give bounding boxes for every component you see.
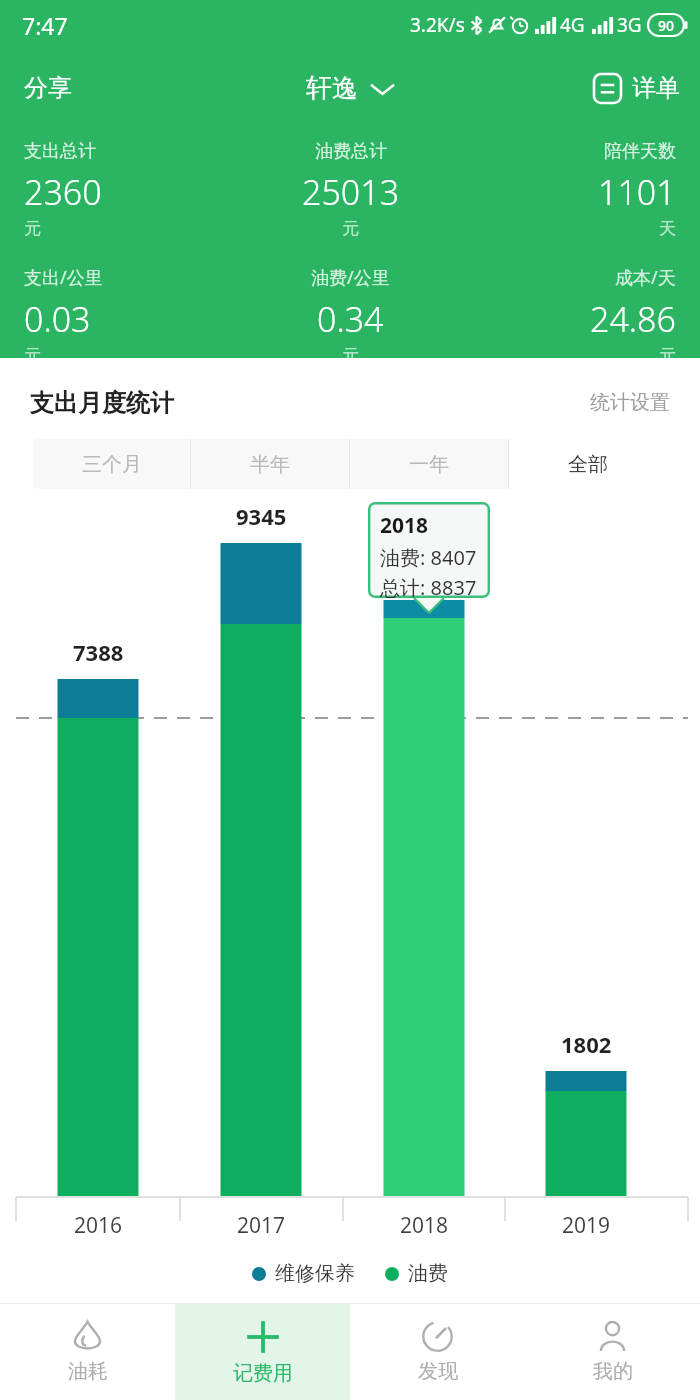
staticText: 90 (658, 16, 675, 35)
staticText: 成本/天 (615, 265, 676, 290)
staticText: 元 (24, 345, 41, 358)
staticText: 2360 (24, 169, 102, 215)
staticText: 维修保养 (275, 1261, 355, 1286)
staticText: 油费总计 (315, 140, 387, 163)
staticText: 记费用 (233, 1361, 293, 1386)
staticText: 24.86 (590, 296, 676, 342)
staticText: 支出月度统计 (30, 388, 174, 418)
staticText: 轩逸 (306, 72, 358, 105)
staticText: 支出总计 (24, 140, 96, 163)
staticText: 4G (560, 12, 585, 38)
staticText: 元 (659, 345, 676, 358)
staticText: 详单 (632, 73, 680, 103)
other: 发现 (421, 1320, 454, 1353)
staticText: 一年 (409, 452, 449, 477)
button[interactable]: 轩逸 (288, 60, 412, 117)
staticText: 全部 (568, 452, 608, 477)
button[interactable]: 统计设置 (584, 384, 676, 421)
staticText: 0.03 (24, 296, 91, 342)
staticText: 元 (342, 345, 359, 358)
staticText: 油耗 (68, 1359, 108, 1384)
staticText: 25013 (302, 169, 400, 215)
staticText: 2019 (562, 1211, 611, 1240)
staticText: 2017 (237, 1211, 286, 1240)
button[interactable]: 我的 (525, 1304, 700, 1400)
staticText: 0.34 (317, 296, 384, 342)
staticText: 发现 (418, 1359, 458, 1384)
staticText: 1101 (598, 169, 676, 215)
button[interactable]: 发现 (350, 1304, 525, 1400)
staticText: 陪伴天数 (604, 140, 676, 163)
staticText: 3G (617, 12, 642, 38)
staticText: 元 (342, 218, 359, 239)
staticText: 3.2K/s (410, 12, 465, 38)
button[interactable]: 三个月 (33, 439, 190, 489)
staticText: 支出/公里 (24, 265, 103, 290)
button[interactable]: 半年 (191, 439, 349, 489)
staticText: 元 (24, 218, 41, 239)
staticText: 油费/公里 (311, 265, 390, 290)
staticText: 半年 (250, 452, 290, 477)
staticText: 分享 (24, 73, 72, 103)
button[interactable]: 详单 (574, 61, 700, 115)
button[interactable]: 油耗 (0, 1304, 175, 1400)
staticText: 我的 (593, 1359, 633, 1384)
other: 记费用 (245, 1319, 281, 1355)
staticText: 1802 (561, 1029, 612, 1059)
staticText: 2018 (380, 511, 429, 540)
staticText: 7:47 (22, 10, 68, 41)
staticText: 2018 (400, 1211, 449, 1240)
staticText: 油费 (408, 1261, 448, 1286)
other: 我的 (596, 1320, 629, 1353)
staticText: 2016 (74, 1211, 123, 1240)
button[interactable]: 一年 (350, 439, 508, 489)
button[interactable]: 记费用 (175, 1304, 350, 1400)
button[interactable]: 全部 (509, 439, 667, 489)
staticText: 油费: 8407 (380, 544, 477, 571)
other: 详单 (594, 74, 621, 103)
button[interactable]: 分享 (0, 59, 96, 117)
staticText: 三个月 (82, 452, 142, 477)
other: 油耗 (71, 1320, 104, 1353)
staticText: 总计: 8837 (380, 574, 477, 598)
staticText: 天 (659, 218, 676, 239)
staticText: 7388 (73, 637, 124, 667)
staticText: 9345 (236, 501, 287, 531)
staticText: 统计设置 (590, 390, 670, 415)
